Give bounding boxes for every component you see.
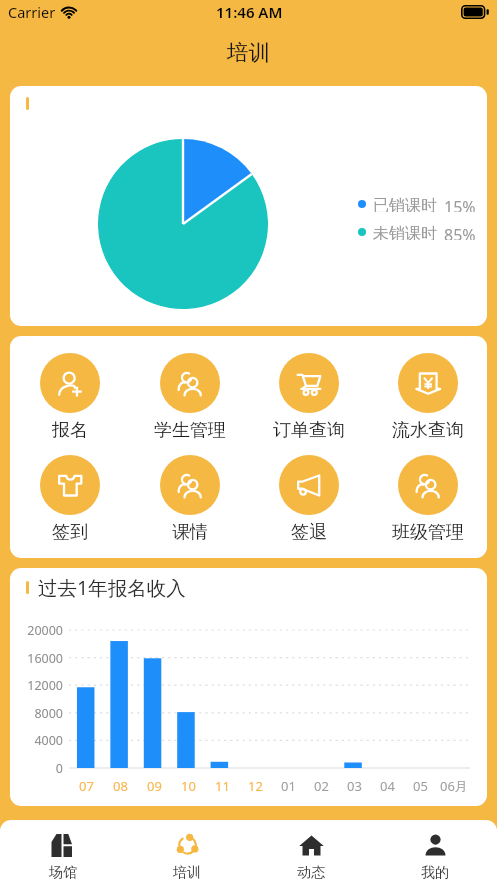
staticText: 我的 (421, 864, 449, 882)
staticText: 06月 (440, 777, 468, 795)
staticText: 签到 (52, 521, 88, 544)
button[interactable]: 订单查询 (249, 353, 368, 442)
staticText: 课情 (172, 521, 208, 544)
staticText: 4000 (10, 732, 63, 749)
staticText: 未销课时 (373, 224, 437, 240)
other: Feed (299, 833, 324, 858)
other: Profile (423, 833, 448, 858)
staticText: 动态 (297, 864, 325, 882)
staticText: 签退 (291, 521, 327, 544)
staticText: Carrier (8, 2, 56, 22)
button[interactable]: Feed (249, 820, 373, 883)
staticText: 16000 (10, 650, 63, 667)
staticText: 11:46 AM (216, 2, 283, 22)
staticText: 09 (147, 777, 162, 795)
staticText: 10 (181, 777, 196, 795)
staticText: 12000 (10, 677, 63, 694)
button[interactable]: 报名 (10, 353, 130, 442)
staticText: 订单查询 (273, 419, 345, 442)
staticText: 07 (79, 777, 94, 795)
staticText: 02 (314, 777, 329, 795)
staticText: 学生管理 (154, 419, 226, 442)
button[interactable]: Venues (0, 820, 125, 883)
button[interactable]: 学生管理 (130, 353, 249, 442)
staticText: 培训 (227, 39, 270, 66)
staticText: 流水查询 (392, 419, 464, 442)
button[interactable]: 流水查询 (368, 353, 487, 442)
staticText: 场馆 (49, 864, 77, 882)
staticText: 05 (413, 777, 428, 795)
staticText: 85% (444, 224, 476, 240)
other: Venues (50, 833, 75, 858)
button[interactable]: Profile (373, 820, 497, 883)
staticText: 08 (113, 777, 128, 795)
staticText: 15% (444, 196, 476, 212)
staticText: 01 (281, 777, 296, 795)
staticText: 0 (10, 760, 63, 777)
staticText: 11 (215, 777, 230, 795)
staticText: 报名 (52, 419, 88, 442)
button[interactable]: 课情 (130, 455, 249, 544)
staticText: 过去1年报名收入 (38, 574, 186, 601)
staticText: 培训 (173, 864, 201, 882)
staticText: 20000 (10, 622, 63, 639)
button[interactable]: 签退 (249, 455, 368, 544)
button[interactable]: 签到 (10, 455, 130, 544)
staticText: 已销课时 (373, 196, 437, 212)
button[interactable]: Training (125, 820, 249, 883)
staticText: 8000 (10, 705, 63, 722)
button[interactable]: 班级管理 (368, 455, 487, 544)
staticText: 班级管理 (392, 521, 464, 544)
staticText: 12 (248, 777, 263, 795)
staticText: 03 (347, 777, 362, 795)
staticText: 04 (380, 777, 395, 795)
other: Training (175, 833, 200, 858)
